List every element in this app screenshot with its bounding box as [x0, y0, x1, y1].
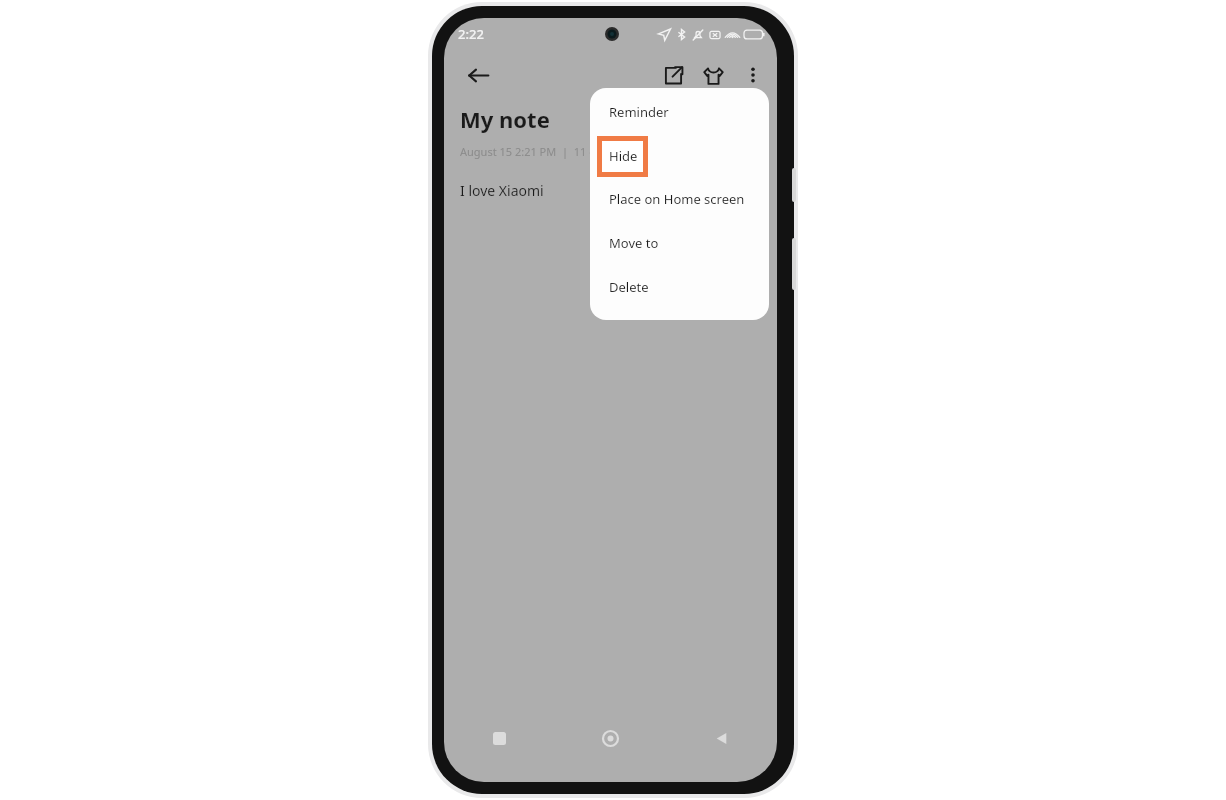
staticText: Place on Home screen: [609, 190, 745, 208]
button[interactable]: Move to: [590, 221, 769, 265]
staticText: Delete: [609, 278, 649, 296]
staticText: 2:22: [458, 25, 484, 43]
button[interactable]: Place on Home screen: [590, 177, 769, 221]
button[interactable]: More options: [733, 55, 773, 95]
button[interactable]: Home: [555, 718, 666, 758]
button[interactable]: Hide: [590, 135, 769, 177]
button[interactable]: Back: [458, 55, 498, 95]
button[interactable]: Theme: [693, 55, 733, 95]
staticText: Hide: [609, 147, 638, 165]
button[interactable]: Reminder: [590, 88, 769, 135]
button[interactable]: Share: [653, 55, 693, 95]
staticText: I love Xiaomi: [460, 181, 544, 200]
button[interactable]: Delete: [590, 265, 769, 309]
staticText: Reminder: [609, 103, 669, 121]
button[interactable]: Back: [666, 718, 777, 758]
staticText: August 15 2:21 PM | 11 characters: [460, 144, 644, 159]
staticText: Move to: [609, 234, 659, 252]
button[interactable]: Recent apps: [444, 718, 555, 758]
staticText: My note: [460, 104, 550, 134]
